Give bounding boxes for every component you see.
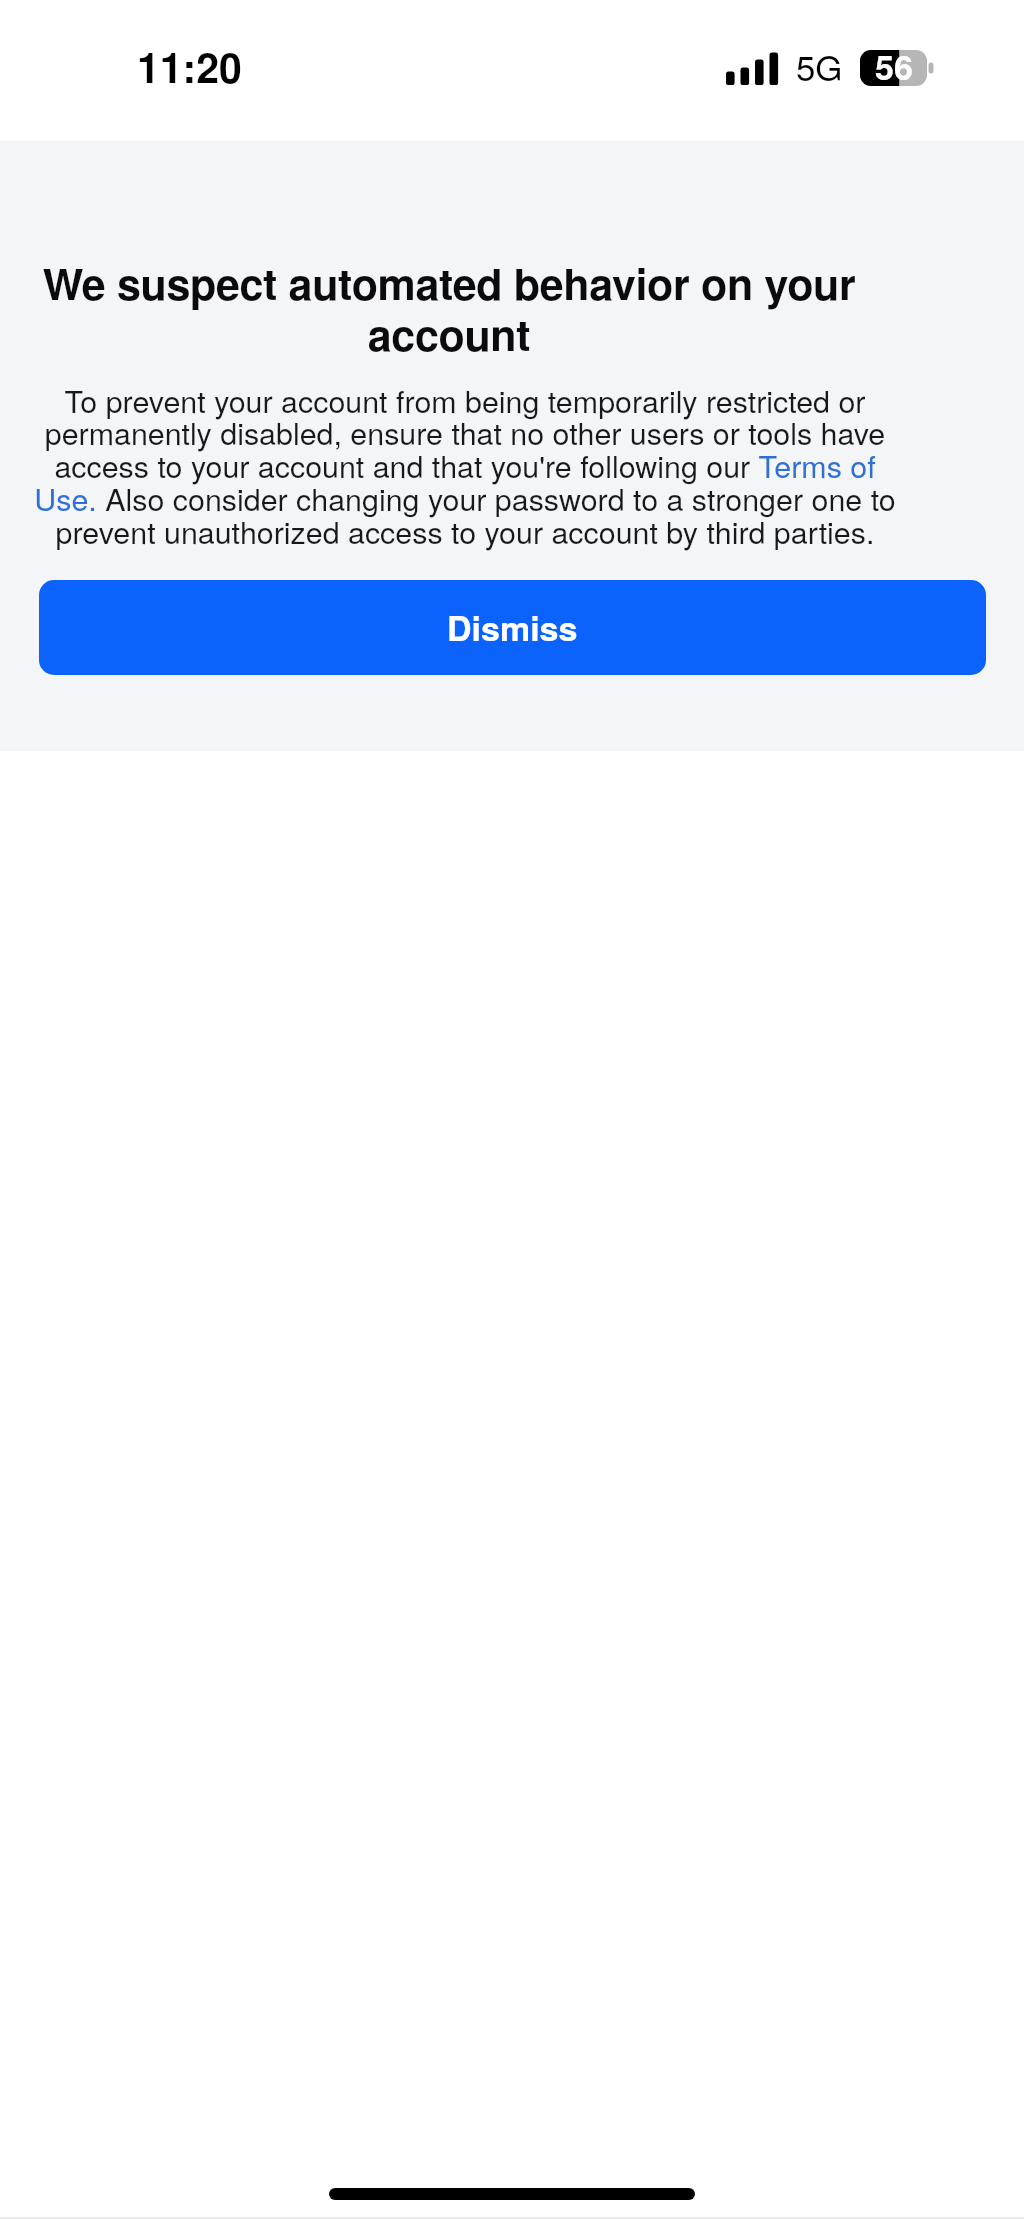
staticText: 11:20 — [137, 37, 242, 96]
button[interactable]: Dismiss — [39, 580, 986, 675]
staticText: To prevent your account from being tempo… — [25, 378, 905, 553]
button[interactable]: Terms of Use — [762, 446, 875, 476]
staticText: 56 — [875, 42, 913, 91]
button[interactable]: Terms of Use — [37, 479, 101, 509]
staticText: We suspect automated behavior on your ac… — [35, 252, 863, 364]
other: Cellular signal — [726, 51, 779, 85]
staticText: Dismiss — [447, 603, 578, 652]
staticText: 5G — [796, 41, 843, 91]
other: Battery 56 percent — [860, 50, 935, 86]
